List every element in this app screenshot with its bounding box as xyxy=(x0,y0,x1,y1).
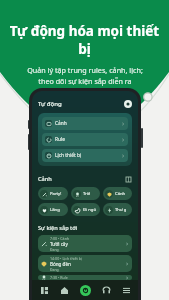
button[interactable]: Trời mưa xyxy=(71,187,100,200)
staticText: Trời mưa xyxy=(83,191,98,197)
staticText: Cảnh xyxy=(55,120,67,127)
button[interactable]: 7:00 • Cảnh xyxy=(38,235,132,252)
button[interactable]: Đi ngủ xyxy=(71,203,100,216)
staticText: Cảnh xyxy=(115,191,126,197)
button[interactable]: Cảnh xyxy=(103,187,132,200)
staticText: 14:00 • Lịch thiết bị xyxy=(50,256,82,261)
button[interactable]: Âm thanh xyxy=(97,280,115,300)
staticText: Bóng đèn xyxy=(50,261,71,267)
button[interactable]: Lịch thiết bị xyxy=(42,149,128,162)
staticText: Lãng mạn xyxy=(50,207,66,213)
button[interactable]: Trang chủ xyxy=(55,280,73,300)
staticText: Quản lý tập trung rules, cảnh, lịch; the… xyxy=(27,65,143,86)
button[interactable]: Xem dạng lưới xyxy=(125,176,132,183)
button[interactable]: 7:30 • Rule xyxy=(38,275,132,280)
staticText: Tự động xyxy=(38,100,62,108)
button[interactable]: Thêm xyxy=(117,280,135,300)
button[interactable]: Bảng điều khiển xyxy=(35,280,53,300)
staticText: Tưới cây xyxy=(50,241,68,247)
staticText: Thư g xyxy=(115,207,127,213)
button[interactable]: Rule xyxy=(42,133,128,146)
staticText: Rule xyxy=(55,136,65,143)
staticText: Sự kiện sắp tới xyxy=(38,224,78,232)
staticText: Cảnh xyxy=(38,175,52,183)
button[interactable]: Party! xyxy=(38,187,68,200)
button[interactable]: Thư g xyxy=(103,203,132,216)
staticText: Lịch thiết bị xyxy=(55,152,82,159)
button[interactable]: Cài đặt xyxy=(124,100,132,108)
button[interactable]: Cảnh xyxy=(42,117,128,130)
staticText: Đang xyxy=(50,247,59,252)
staticText: Tự động hóa mọi thiết bị xyxy=(8,22,161,58)
button[interactable]: Lãng mạn xyxy=(38,203,68,216)
staticText: 7:00 • Cảnh xyxy=(50,236,70,241)
staticText: Party! xyxy=(50,191,62,197)
button[interactable]: Tự động xyxy=(76,280,94,300)
staticText: Đang xyxy=(50,267,59,272)
staticText: 7:30 • Rule xyxy=(50,275,68,280)
staticText: Đi ngủ xyxy=(83,207,96,213)
button[interactable]: 14:00 • Lịch thiết bị xyxy=(38,255,132,272)
